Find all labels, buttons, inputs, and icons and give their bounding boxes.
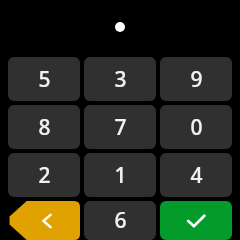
button[interactable]: 0 [160,105,232,149]
staticText: 3 [114,65,127,94]
button[interactable]: 9 [160,57,232,101]
button[interactable]: 6 [84,201,156,240]
staticText: 5 [38,65,51,94]
button[interactable]: 1 [84,153,156,197]
button[interactable]: 8 [8,105,80,149]
staticText: 8 [38,113,51,142]
staticText: 6 [114,206,127,235]
button[interactable]: Delete [8,201,80,240]
button[interactable]: 2 [8,153,80,197]
button[interactable]: 4 [160,153,232,197]
button[interactable]: 5 [8,57,80,101]
staticText: 9 [190,65,203,94]
button[interactable]: 7 [84,105,156,149]
staticText: 7 [114,113,127,142]
staticText: 2 [38,161,51,190]
staticText: 1 [114,161,127,190]
button[interactable]: 3 [84,57,156,101]
button[interactable]: Confirm [160,201,232,240]
staticText: 4 [190,161,203,190]
staticText: 0 [190,113,203,142]
